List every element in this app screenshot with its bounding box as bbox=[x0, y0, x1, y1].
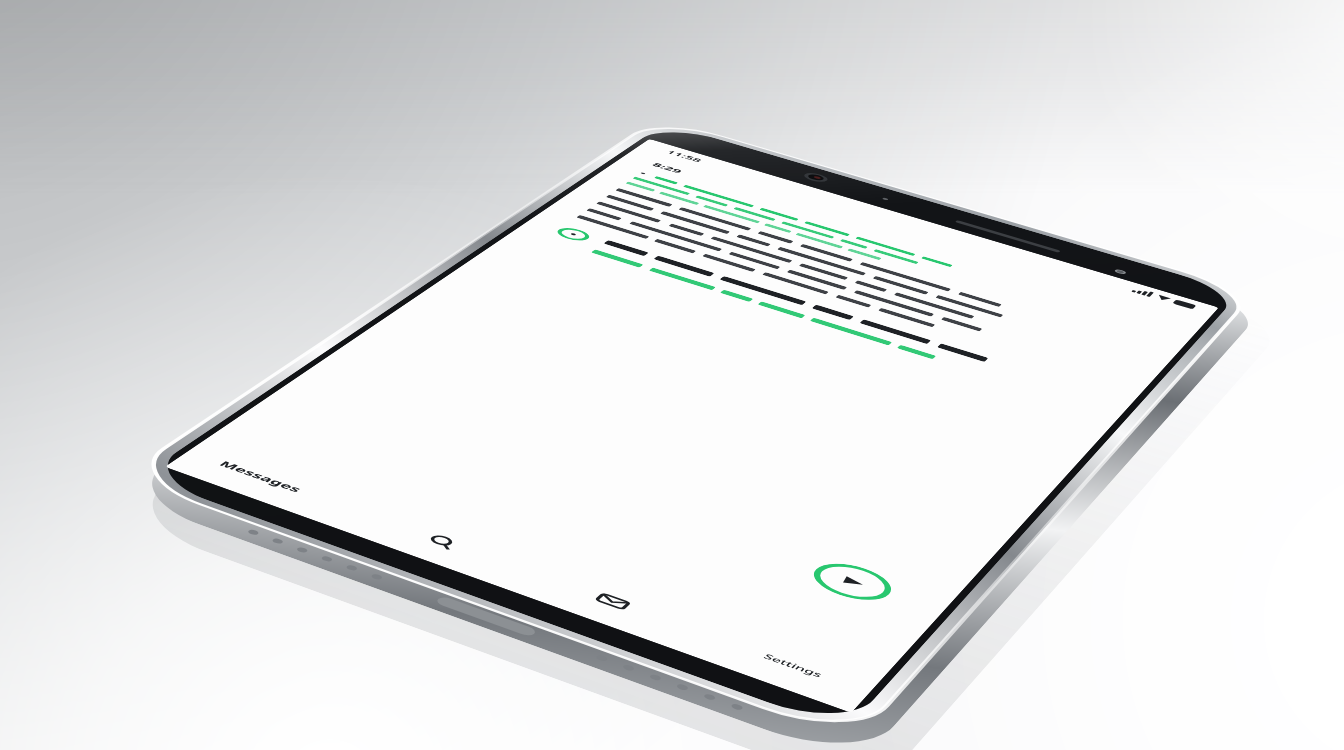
staticText: 11:58 bbox=[665, 149, 705, 164]
button[interactable]: Search bbox=[405, 523, 477, 558]
staticText: 8:29 bbox=[650, 161, 684, 175]
staticText: Messages bbox=[216, 459, 306, 495]
button[interactable]: Mail bbox=[576, 583, 649, 620]
button[interactable]: Profile bbox=[552, 225, 594, 243]
button[interactable]: Compose bbox=[802, 556, 902, 608]
staticText: Settings bbox=[761, 652, 826, 680]
